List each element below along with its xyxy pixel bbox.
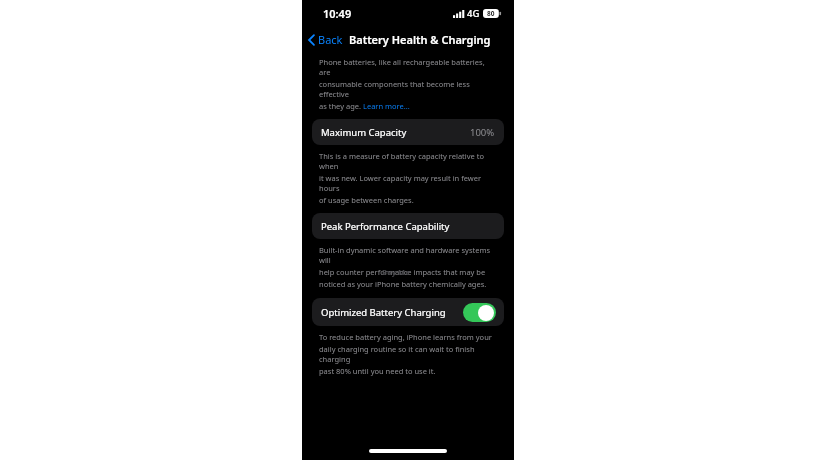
staticText: 80 — [487, 9, 495, 18]
button[interactable]: Learn more... — [363, 101, 410, 111]
button[interactable]: Maximum Capacity — [312, 119, 504, 145]
staticText: 10:49 — [323, 6, 352, 21]
staticText: Phone batteries, like all rechargeable b… — [319, 57, 497, 77]
staticText: daily charging routine so it can wait to… — [319, 344, 497, 364]
button[interactable]: Optimized Battery Charging toggle, on — [463, 303, 496, 322]
staticText: Buy Me — [382, 267, 410, 277]
staticText: Maximum Capacity — [321, 126, 407, 139]
staticText: Peak Performance Capability — [321, 220, 450, 233]
staticText: To reduce battery aging, iPhone learns f… — [319, 332, 492, 342]
staticText: Back — [318, 32, 343, 47]
staticText: This is a measure of battery capacity re… — [319, 151, 497, 171]
staticText: of usage between charges. — [319, 195, 414, 205]
staticText: Battery Health & Charging — [349, 32, 491, 47]
staticText: consumable components that become less e… — [319, 79, 497, 99]
button[interactable]: Optimized Battery Charging — [312, 298, 504, 326]
button[interactable]: Back — [302, 29, 347, 50]
staticText: as they age. — [319, 101, 363, 111]
button[interactable]: Peak Performance Capability — [312, 213, 504, 239]
staticText: help counter performance impacts that ma… — [319, 267, 486, 277]
staticText: noticed as your iPhone battery chemicall… — [319, 279, 487, 289]
staticText: it was new. Lower capacity may result in… — [319, 173, 497, 193]
staticText: 4G — [467, 7, 480, 20]
staticText: 100% — [470, 126, 495, 139]
staticText: past 80% until you need to use it. — [319, 366, 436, 376]
staticText: Built-in dynamic software and hardware s… — [319, 245, 497, 265]
staticText: Optimized Battery Charging — [321, 306, 446, 319]
